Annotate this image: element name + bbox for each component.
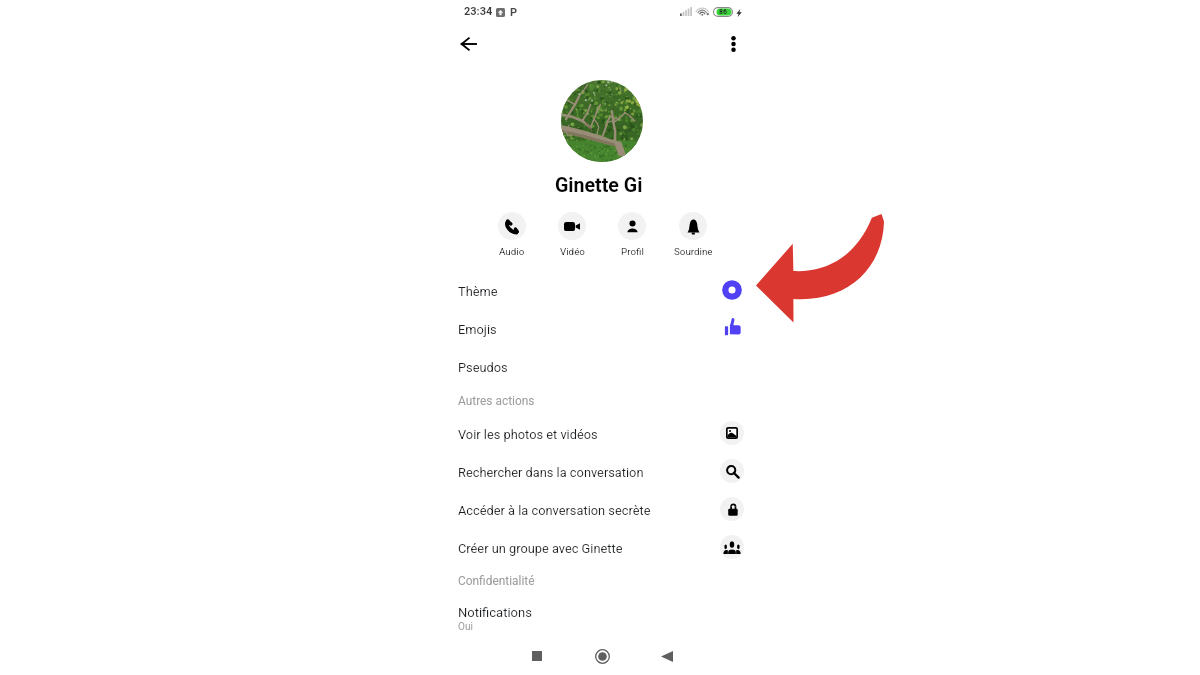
staticText: Accéder à la conversation secrète — [458, 503, 651, 518]
button[interactable]: Navigate back — [653, 642, 681, 670]
staticText: Confidentialité — [458, 574, 535, 588]
button[interactable]: Sourdine — [663, 212, 723, 257]
button[interactable]: Profile photo — [561, 80, 643, 162]
button[interactable]: Rechercher dans la conversation — [450, 453, 752, 491]
staticText: Emojis — [458, 322, 497, 337]
staticText: Sourdine — [674, 246, 713, 257]
button[interactable]: Voir les photos et vidéos — [450, 415, 752, 453]
button[interactable]: Accéder à la conversation secrète — [450, 491, 752, 529]
staticText: Oui — [458, 621, 473, 633]
button[interactable]: Back — [450, 26, 486, 62]
button[interactable]: Créer un groupe avec Ginette — [450, 529, 752, 567]
staticText: Thème — [458, 284, 498, 299]
button[interactable]: Notifications — [450, 600, 752, 640]
button[interactable]: Emojis — [450, 310, 752, 348]
staticText: Voir les photos et vidéos — [458, 427, 598, 442]
staticText: Ginette Gi — [555, 174, 643, 197]
staticText: Vidéo — [560, 246, 585, 257]
staticText: Audio — [499, 246, 525, 257]
staticText: Rechercher dans la conversation — [458, 465, 644, 480]
staticText: Créer un groupe avec Ginette — [458, 541, 623, 556]
button[interactable]: Profil — [602, 212, 662, 257]
button[interactable]: Thème — [450, 272, 752, 310]
button[interactable]: Vidéo — [542, 212, 602, 257]
staticText: Autres actions — [458, 394, 535, 408]
staticText: Pseudos — [458, 360, 508, 375]
button[interactable]: Home — [588, 642, 616, 670]
staticText: 86 — [719, 8, 728, 16]
button[interactable]: Audio — [482, 212, 542, 257]
button[interactable]: Pseudos — [450, 348, 752, 386]
button[interactable]: Recents — [523, 642, 551, 670]
staticText: P — [510, 6, 518, 19]
staticText: 23:34 — [464, 5, 493, 18]
staticText: Notifications — [458, 605, 532, 620]
button[interactable]: More options — [715, 26, 751, 62]
staticText: Profil — [621, 246, 644, 257]
